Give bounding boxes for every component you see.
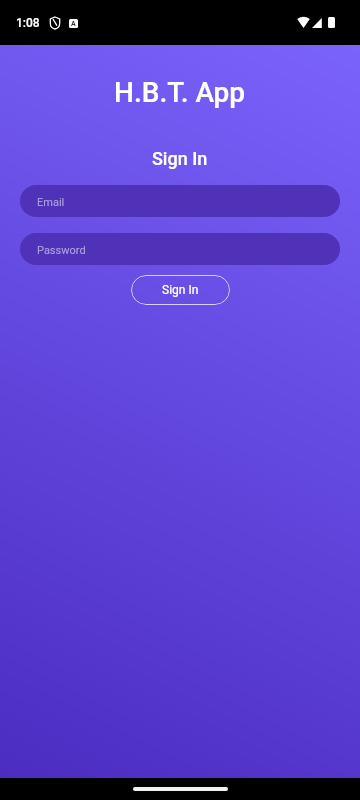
staticText: 1:08	[16, 16, 40, 30]
staticText: Email	[37, 196, 65, 209]
button[interactable]: Email	[20, 185, 340, 217]
staticText: Password	[37, 244, 86, 257]
button[interactable]: Password	[20, 233, 340, 265]
staticText: Sign In	[162, 283, 199, 297]
staticText: H.B.T. App	[114, 76, 246, 109]
staticText: Sign In	[152, 148, 208, 169]
button[interactable]: Sign In	[131, 275, 230, 305]
staticText: A	[71, 20, 76, 28]
